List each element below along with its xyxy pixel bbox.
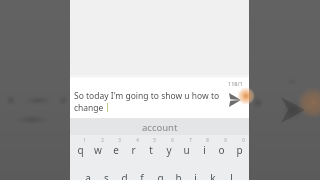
staticText: d bbox=[121, 171, 128, 180]
button[interactable]: j bbox=[186, 171, 204, 180]
staticText: o bbox=[218, 143, 225, 157]
staticText: 9 bbox=[224, 137, 227, 143]
staticText: change bbox=[74, 102, 104, 114]
staticText: u bbox=[183, 143, 190, 157]
button[interactable]: 118/1 bbox=[70, 78, 249, 118]
staticText: t bbox=[149, 143, 153, 157]
button[interactable]: d bbox=[115, 171, 133, 180]
button[interactable]: y bbox=[160, 143, 178, 159]
staticText: i bbox=[203, 143, 206, 157]
staticText: s bbox=[104, 171, 109, 180]
staticText: 1 bbox=[83, 137, 86, 143]
button[interactable]: w bbox=[89, 143, 107, 159]
staticText: 4 bbox=[136, 137, 139, 143]
staticText: e bbox=[113, 143, 119, 157]
button[interactable]: o bbox=[212, 143, 230, 159]
staticText: 0 bbox=[242, 137, 245, 143]
staticText: 3 bbox=[118, 137, 121, 143]
staticText: 5 bbox=[153, 137, 156, 143]
staticText: 7 bbox=[189, 137, 192, 143]
staticText: 2 bbox=[101, 137, 104, 143]
staticText: w bbox=[94, 143, 102, 157]
button[interactable]: k bbox=[204, 171, 222, 180]
staticText: 8 bbox=[206, 137, 209, 143]
staticText: r bbox=[131, 143, 136, 157]
button[interactable]: l bbox=[222, 171, 240, 180]
staticText: l bbox=[230, 171, 233, 180]
staticText: account bbox=[142, 121, 178, 134]
button[interactable]: e bbox=[107, 143, 125, 159]
staticText: q bbox=[77, 143, 84, 157]
button[interactable]: h bbox=[169, 171, 187, 180]
staticText: So today I'm going to show u how to bbox=[74, 90, 220, 102]
button[interactable]: g bbox=[151, 171, 169, 180]
button[interactable]: q bbox=[71, 143, 89, 159]
staticText: k bbox=[210, 171, 216, 180]
staticText: 6 bbox=[171, 137, 174, 143]
staticText: p bbox=[236, 143, 243, 157]
button[interactable]: Send bbox=[227, 92, 243, 107]
button[interactable]: account bbox=[70, 118, 249, 135]
button[interactable]: t bbox=[142, 143, 160, 159]
staticText: g bbox=[157, 171, 164, 180]
staticText: f bbox=[140, 171, 144, 180]
button[interactable]: a bbox=[79, 171, 97, 180]
button[interactable]: s bbox=[97, 171, 115, 180]
staticText: h bbox=[175, 171, 182, 180]
button[interactable]: f bbox=[133, 171, 151, 180]
button[interactable]: i bbox=[195, 143, 213, 159]
staticText: a bbox=[85, 171, 91, 180]
button[interactable]: r bbox=[124, 143, 142, 159]
staticText: j bbox=[194, 171, 197, 180]
button[interactable]: u bbox=[177, 143, 195, 159]
staticText: 118/1 bbox=[228, 80, 243, 87]
button[interactable]: p bbox=[230, 143, 248, 159]
staticText: y bbox=[166, 143, 172, 157]
